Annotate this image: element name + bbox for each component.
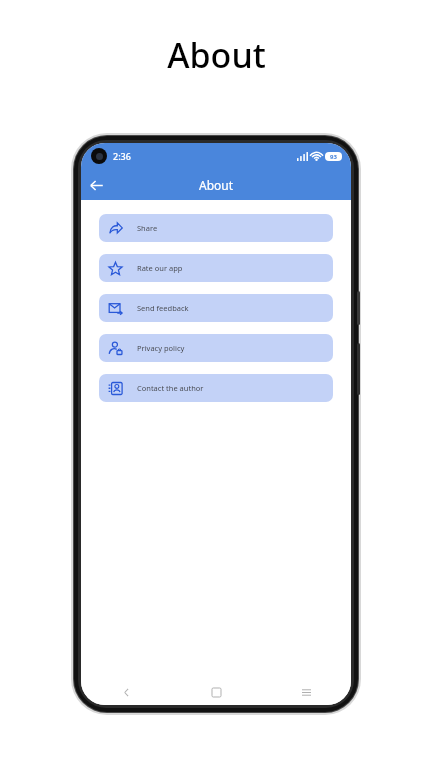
button[interactable]: Send feedback	[99, 294, 333, 322]
button[interactable]: Rate our app	[99, 254, 333, 282]
button[interactable]: Share	[99, 214, 333, 242]
button[interactable]: Home	[171, 679, 261, 705]
staticText: Rate our app	[137, 263, 183, 273]
staticText: About	[167, 32, 266, 78]
button[interactable]: Back	[81, 679, 171, 705]
staticText: 93	[330, 153, 337, 161]
button[interactable]: Recent apps	[261, 679, 351, 705]
staticText: Share	[137, 223, 158, 233]
staticText: Contact the author	[137, 383, 204, 393]
staticText: About	[199, 177, 234, 193]
button[interactable]: Back	[81, 170, 111, 200]
button[interactable]: Contact the author	[99, 374, 333, 402]
staticText: Privacy policy	[137, 343, 185, 353]
button[interactable]: Privacy policy	[99, 334, 333, 362]
staticText: Send feedback	[137, 303, 189, 313]
staticText: 2:36	[113, 150, 131, 162]
